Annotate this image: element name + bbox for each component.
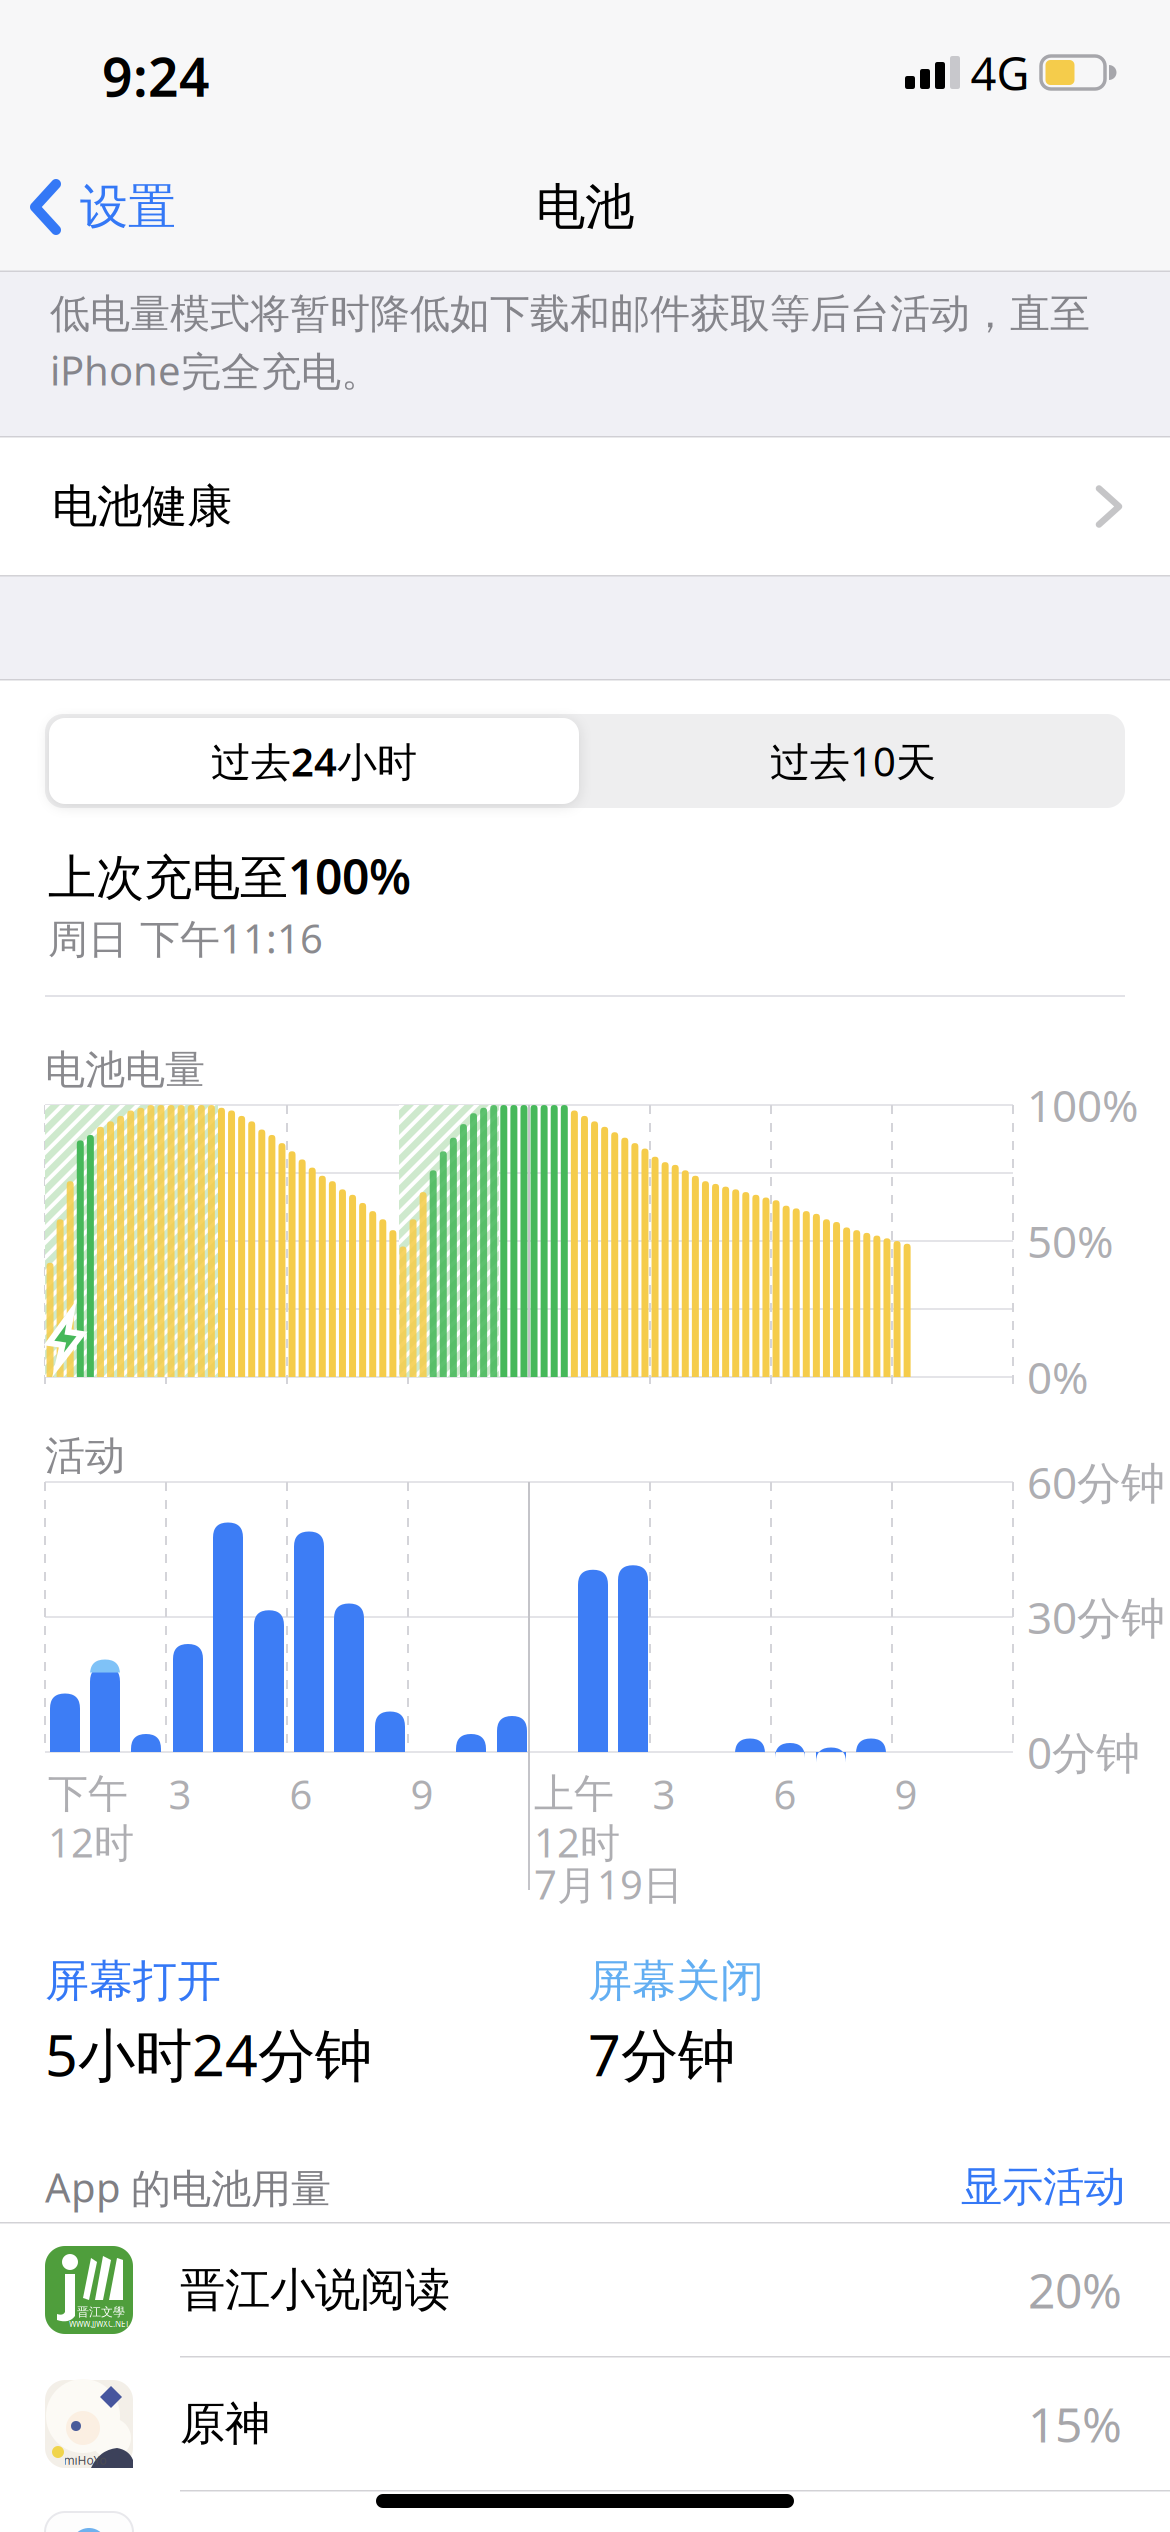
staticText: 下午 xyxy=(48,1769,128,1818)
button[interactable]: 晋江文學 xyxy=(0,2223,1170,2356)
staticText: 上午 xyxy=(534,1769,614,1818)
staticText: 晋江小说阅读 xyxy=(180,2262,450,2318)
staticText: 9 xyxy=(894,1767,917,1820)
staticText: 12时 xyxy=(534,1815,620,1868)
staticText: 6 xyxy=(289,1767,312,1820)
staticText: 9 xyxy=(410,1767,433,1820)
staticText: 0% xyxy=(1027,1348,1089,1406)
button[interactable]: 过去10天 xyxy=(588,718,1118,804)
staticText: 7分钟 xyxy=(588,2016,735,2092)
staticText: iPhone完全充电。 xyxy=(50,343,381,397)
staticText: App 的电池用量 xyxy=(45,2160,331,2214)
staticText: 20% xyxy=(1028,2258,1122,2322)
staticText: 设置 xyxy=(80,177,176,236)
staticText: 5小时24分钟 xyxy=(45,2016,372,2092)
staticText: miHoYo xyxy=(63,2452,106,2468)
staticText: 电池健康 xyxy=(52,479,232,534)
staticText: 12时 xyxy=(48,1815,134,1868)
button[interactable]: 过去24小时 xyxy=(49,718,579,804)
staticText: 3 xyxy=(652,1767,675,1820)
staticText: 屏幕打开 xyxy=(45,1954,221,2008)
button[interactable]: 设置 xyxy=(30,162,260,252)
staticText: 屏幕关闭 xyxy=(588,1954,764,2008)
staticText: 0分钟 xyxy=(1027,1723,1140,1781)
staticText: 3 xyxy=(168,1767,191,1820)
staticText: 原神 xyxy=(180,2396,270,2452)
staticText: 15% xyxy=(1028,2392,1122,2456)
staticText: 低电量模式将暂时降低如下载和邮件获取等后台活动，直至 xyxy=(50,289,1090,338)
staticText: 上次充电至100% xyxy=(48,844,411,908)
button[interactable]: 显示活动 xyxy=(825,2162,1125,2212)
staticText: 9:24 xyxy=(102,41,210,111)
staticText: 过去24小时 xyxy=(211,734,417,787)
staticText: 电池 xyxy=(536,177,634,237)
staticText: 7月19日 xyxy=(534,1857,683,1910)
button[interactable]: miHoYo xyxy=(0,2357,1170,2490)
staticText: 100% xyxy=(1027,1076,1139,1134)
staticText: 显示活动 xyxy=(961,2162,1125,2212)
staticText: 电池电量 xyxy=(45,1045,205,1094)
staticText: 过去10天 xyxy=(770,734,936,787)
staticText: 活动 xyxy=(45,1431,125,1480)
staticText: 晋江文學 xyxy=(77,2305,125,2319)
staticText: 4G xyxy=(970,43,1029,103)
staticText: 60分钟 xyxy=(1027,1453,1165,1511)
staticText: 30分钟 xyxy=(1027,1588,1165,1646)
staticText: WWW.JJWXC.NET xyxy=(69,2319,129,2329)
button[interactable]: 电池健康 xyxy=(0,438,1170,575)
staticText: 6 xyxy=(773,1767,796,1820)
staticText: 50% xyxy=(1027,1212,1114,1270)
staticText: 周日 下午11:16 xyxy=(48,911,323,964)
